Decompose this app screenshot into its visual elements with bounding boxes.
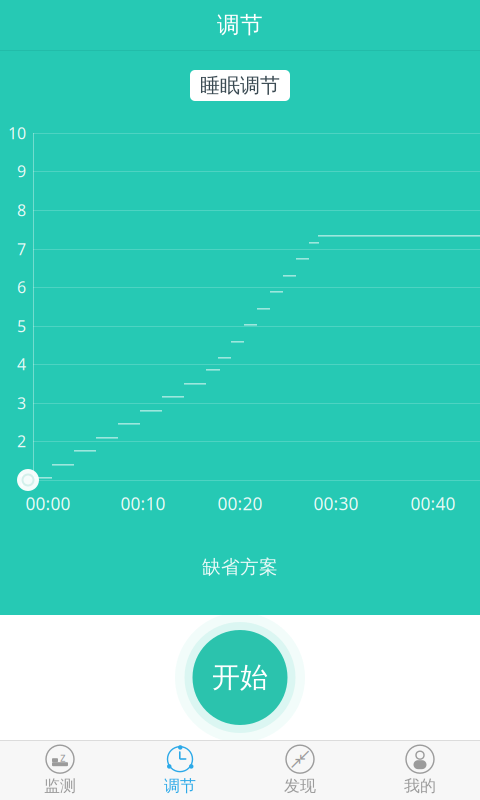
button[interactable]: 调节 xyxy=(120,741,240,800)
staticText: 4 xyxy=(17,353,26,375)
button[interactable]: z xyxy=(0,741,120,800)
staticText: 00:30 xyxy=(313,492,358,515)
staticText: 8 xyxy=(17,199,26,221)
staticText: 3 xyxy=(17,392,26,414)
staticText: 00:40 xyxy=(410,492,455,515)
staticText: 00:20 xyxy=(217,492,262,515)
staticText: 睡眠调节 xyxy=(200,73,280,98)
staticText: ↗ xyxy=(289,754,302,772)
button[interactable]: ↗ xyxy=(240,741,360,800)
staticText: 2 xyxy=(17,430,26,452)
staticText: 发现 xyxy=(284,776,316,796)
button[interactable]: 睡眠调节 xyxy=(190,70,290,101)
staticText: ↙ xyxy=(298,746,311,764)
button[interactable]: 开始 xyxy=(165,615,315,740)
staticText: 00:10 xyxy=(120,492,165,515)
button[interactable]: 我的 xyxy=(360,741,480,800)
staticText: 5 xyxy=(17,315,26,337)
staticText: 缺省方案 xyxy=(202,555,278,578)
staticText: z xyxy=(60,749,66,765)
staticText: 7 xyxy=(17,238,26,260)
staticText: 9 xyxy=(17,160,26,182)
staticText: 监测 xyxy=(44,776,76,796)
staticText: 6 xyxy=(17,276,26,298)
staticText: 开始 xyxy=(212,660,268,695)
staticText: 1 xyxy=(17,469,26,491)
staticText: 调节 xyxy=(164,776,196,796)
staticText: 10 xyxy=(8,122,26,144)
staticText: 调节 xyxy=(217,11,263,39)
staticText: 我的 xyxy=(404,776,436,796)
staticText: 00:00 xyxy=(25,492,70,515)
